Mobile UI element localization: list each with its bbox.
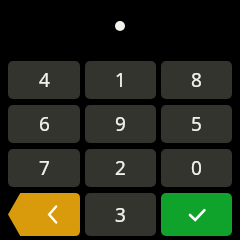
staticText: 4 [39,67,50,93]
staticText: 1 [115,67,126,93]
button[interactable]: 2 [85,149,156,187]
button[interactable]: 9 [85,105,156,143]
button[interactable]: Confirm [161,193,232,236]
button[interactable]: Back [8,193,80,236]
staticText: 0 [191,155,202,181]
staticText: 5 [191,111,202,137]
staticText: 3 [115,202,126,228]
button[interactable]: 5 [161,105,232,143]
button[interactable]: 3 [85,193,156,236]
staticText: 8 [191,67,202,93]
staticText: 7 [39,155,50,181]
button[interactable]: 0 [161,149,232,187]
staticText: 2 [115,155,126,181]
button[interactable]: 1 [85,61,156,99]
button[interactable]: 6 [8,105,80,143]
staticText: 9 [115,111,126,137]
button[interactable]: 8 [161,61,232,99]
staticText: 6 [39,111,50,137]
button[interactable]: 4 [8,61,80,99]
button[interactable]: 7 [8,149,80,187]
